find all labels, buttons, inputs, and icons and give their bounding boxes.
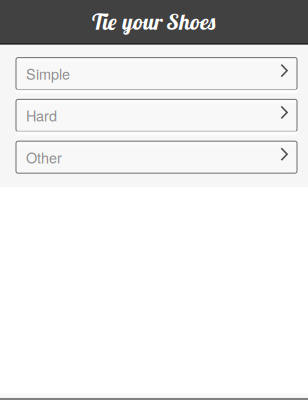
staticText: Other [26,147,62,167]
staticText: Hard [26,105,57,126]
button[interactable]: Other [16,141,297,173]
staticText: Simple [26,63,70,84]
staticText: Tie your Shoes [91,8,217,35]
button[interactable]: Simple [16,58,297,90]
button[interactable]: Hard [16,99,297,131]
